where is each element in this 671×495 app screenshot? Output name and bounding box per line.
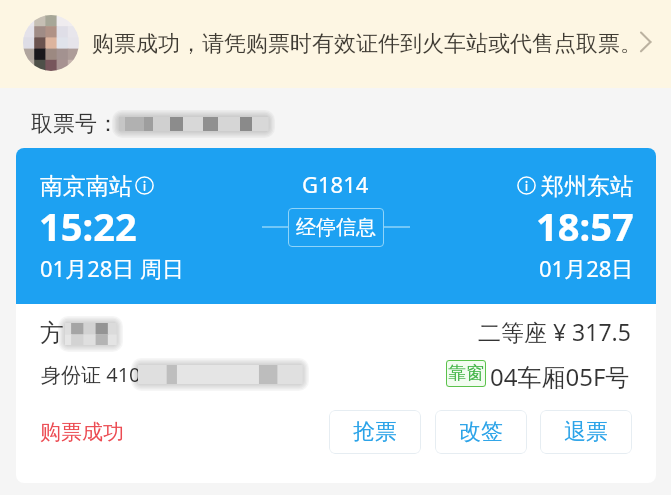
staticText: 南京南站 — [40, 172, 132, 201]
staticText: 郑州东站 — [541, 172, 633, 201]
staticText: 靠窗 — [448, 362, 484, 385]
button[interactable]: 购票成功，请凭购票时有效证件到火车站或代售点取票。 — [0, 0, 671, 88]
staticText: 15:22 — [39, 200, 137, 252]
staticText: 取票号： — [31, 110, 119, 138]
staticText: 18:57 — [536, 200, 634, 252]
staticText: 购票成功，请凭购票时有效证件到火车站或代售点取票。 — [92, 30, 642, 58]
staticText: 改签 — [459, 418, 503, 446]
button[interactable]: 抢票 — [329, 410, 421, 454]
staticText: 01月28日 周日 — [40, 253, 185, 283]
staticText: G1814 — [302, 169, 369, 199]
staticText: 01月28日 — [539, 253, 634, 283]
button[interactable]: Open details — [630, 22, 664, 64]
staticText: 退票 — [564, 418, 608, 446]
button[interactable]: 南京南站 — [16, 148, 656, 483]
staticText: 购票成功 — [40, 419, 124, 445]
staticText: 经停信息 — [296, 215, 376, 240]
button[interactable]: 经停信息 — [288, 208, 384, 247]
staticText: 抢票 — [353, 418, 397, 446]
staticText: 方 — [40, 318, 64, 348]
staticText: 身份证 410 — [41, 361, 141, 388]
button[interactable]: 退票 — [540, 410, 632, 454]
button[interactable]: 改签 — [435, 410, 527, 454]
staticText: 04车厢05F号 — [490, 360, 630, 393]
staticText: 二等座 ¥ 317.5 — [478, 316, 631, 347]
